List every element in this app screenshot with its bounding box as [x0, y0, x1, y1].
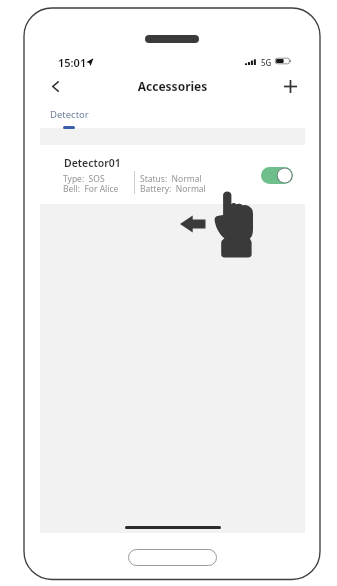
staticText: Detector: [50, 108, 89, 121]
button[interactable]: Back: [42, 73, 68, 99]
staticText: 5G: [261, 57, 272, 68]
staticText: Detector01: [64, 156, 121, 170]
staticText: Bell: For Alice: [63, 183, 119, 195]
button[interactable]: Detector: [46, 100, 90, 128]
staticText: Status: Normal: [140, 173, 202, 185]
button[interactable]: Add accessory: [277, 73, 303, 99]
staticText: Type: SOS: [63, 173, 105, 185]
button[interactable]: Enable detector: [261, 167, 293, 184]
staticText: 15:01: [58, 55, 87, 70]
staticText: Accessories: [40, 78, 305, 94]
button[interactable]: Detector01: [40, 145, 305, 204]
staticText: Battery: Normal: [140, 183, 206, 195]
